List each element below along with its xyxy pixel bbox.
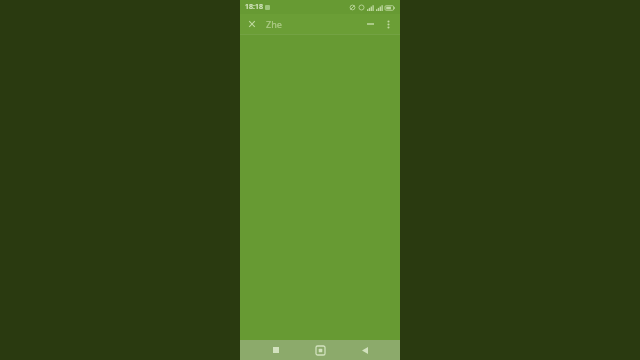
button[interactable]: More options xyxy=(380,16,396,32)
button[interactable]: Back xyxy=(356,341,374,359)
button[interactable]: Home xyxy=(311,341,329,359)
button[interactable]: Recent apps xyxy=(267,341,285,359)
button[interactable]: Close xyxy=(244,16,260,32)
staticText: Zhe xyxy=(266,18,282,30)
staticText: 18:18 xyxy=(245,2,263,12)
button[interactable]: Minimise xyxy=(362,16,378,32)
